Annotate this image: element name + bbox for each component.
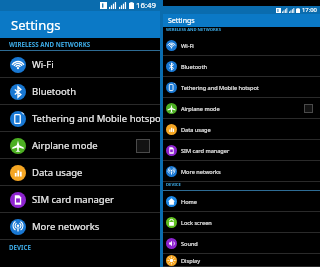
staticText: DEVICE xyxy=(9,243,31,251)
button[interactable]: Lock screen xyxy=(160,212,320,233)
staticText: More networks xyxy=(181,168,221,176)
staticText: Wi-Fi xyxy=(32,58,54,71)
button[interactable]: Airplane mode xyxy=(160,98,320,119)
button[interactable]: Data usage xyxy=(160,119,320,140)
button[interactable]: Wi-Fi xyxy=(0,51,160,78)
staticText: 17:00 xyxy=(302,6,317,14)
button[interactable]: Airplane mode xyxy=(0,132,160,159)
staticText: Wi-Fi xyxy=(181,42,194,50)
button[interactable]: Sound xyxy=(160,233,320,254)
staticText: Display xyxy=(181,257,201,265)
staticText: Bluetooth xyxy=(181,63,207,71)
staticText: Home xyxy=(181,198,197,206)
button[interactable]: More networks xyxy=(0,213,160,240)
staticText: Sound xyxy=(181,240,198,248)
staticText: More networks xyxy=(32,220,100,233)
staticText: SIM card manager xyxy=(181,147,230,155)
staticText: WIRELESS AND NETWORKS xyxy=(166,27,221,33)
staticText: Data usage xyxy=(181,126,211,134)
button[interactable]: Data usage xyxy=(0,159,160,186)
staticText: Tethering and Mobile hotspot xyxy=(181,84,259,92)
staticText: DEVICE xyxy=(166,182,181,188)
button[interactable]: More networks xyxy=(160,161,320,182)
button[interactable]: Bluetooth xyxy=(160,56,320,77)
staticText: Lock screen xyxy=(181,219,212,227)
button[interactable]: Bluetooth xyxy=(0,78,160,105)
staticText: WIRELESS AND NETWORKS xyxy=(9,40,91,48)
button[interactable]: Display xyxy=(160,254,320,267)
staticText: Airplane mode xyxy=(181,105,220,113)
button[interactable]: Home xyxy=(160,191,320,212)
staticText: Settings xyxy=(168,16,195,26)
staticText: SIM card manager xyxy=(32,193,114,206)
staticText: Airplane mode xyxy=(32,139,98,152)
button[interactable]: SIM card manager xyxy=(160,140,320,161)
staticText: Settings xyxy=(11,16,61,34)
button[interactable]: Tethering and Mobile hotspot xyxy=(0,105,160,132)
staticText: Data usage xyxy=(32,166,83,179)
button[interactable]: SIM card manager xyxy=(0,186,160,213)
staticText: Tethering and Mobile hotspot xyxy=(32,112,165,125)
button[interactable]: Wi-Fi xyxy=(160,35,320,56)
staticText: Bluetooth xyxy=(32,85,77,98)
button[interactable]: Tethering and Mobile hotspot xyxy=(160,77,320,98)
staticText: 16:49 xyxy=(136,0,157,11)
